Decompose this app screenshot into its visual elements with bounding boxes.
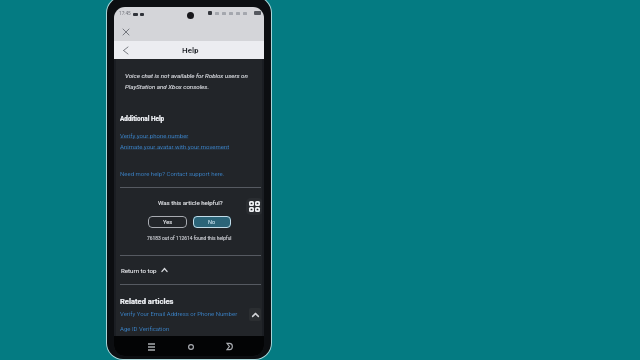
button[interactable]: Recent apps (144, 339, 159, 354)
button[interactable]: Verify Your Email Address or Phone Numbe… (120, 310, 238, 317)
staticText: Help (182, 46, 199, 55)
staticText: Voice chat is not available for Roblox u… (125, 72, 248, 91)
staticText: Yes (163, 219, 173, 226)
staticText: 17:45 (119, 11, 131, 17)
staticText: No (208, 219, 216, 226)
button[interactable]: Verify your phone number (120, 132, 189, 139)
button[interactable]: Scroll to top (249, 308, 261, 321)
button[interactable]: Return to top (114, 256, 264, 284)
button[interactable]: Animate your avatar with your movement (120, 143, 230, 150)
button[interactable]: Yes (148, 216, 187, 228)
button[interactable]: Need more help? Contact support here. (120, 170, 225, 177)
staticText: Related articles (120, 297, 174, 306)
button[interactable]: No (193, 216, 231, 228)
button[interactable]: Home (183, 339, 198, 354)
staticText: Was this article helpful? (158, 199, 223, 206)
staticText: Additional Help (120, 115, 165, 123)
button[interactable]: Age ID Verification (120, 325, 170, 332)
staticText: 76183 out of 112614 found this helpful (147, 235, 232, 241)
button[interactable]: Close (118, 24, 133, 39)
button[interactable]: Apps (246, 198, 263, 215)
button[interactable]: Back (222, 339, 237, 354)
staticText: Return to top (121, 267, 157, 274)
button[interactable]: Back (118, 43, 133, 58)
